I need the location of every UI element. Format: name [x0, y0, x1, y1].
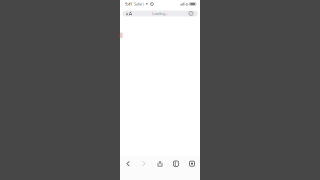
- button[interactable]: Bookmarks: [168, 156, 184, 172]
- staticText: Safari: [134, 1, 144, 7]
- button[interactable]: Stop loading: [185, 11, 196, 16]
- button[interactable]: Back: [120, 156, 136, 172]
- staticText: 9:41: [125, 1, 132, 7]
- button[interactable]: Share: [152, 156, 168, 172]
- button[interactable]: Tabs: [184, 156, 200, 172]
- button[interactable]: Forward: [136, 156, 152, 172]
- staticText: Loading…: [152, 11, 168, 16]
- button[interactable]: Page settings: [123, 11, 134, 16]
